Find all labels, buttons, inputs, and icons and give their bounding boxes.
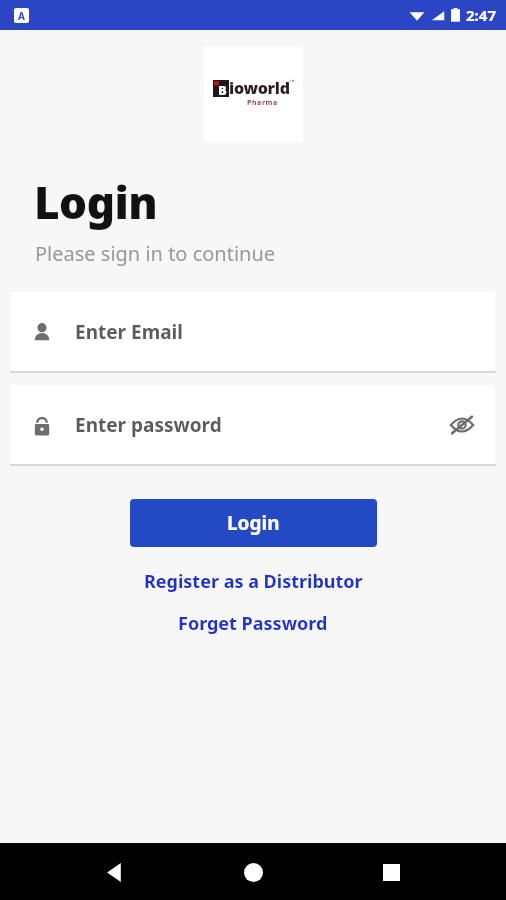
staticText: Enter Email <box>75 319 183 345</box>
button[interactable]: Register as a Distributor <box>132 565 375 598</box>
staticText: Login <box>34 172 158 232</box>
button[interactable]: Toggle password visibility <box>446 409 478 441</box>
button[interactable]: Home <box>230 849 276 895</box>
staticText: Pharma <box>247 98 278 108</box>
button[interactable]: Recent apps <box>368 849 414 895</box>
staticText: ioworld <box>229 77 290 99</box>
button[interactable]: Enter Email <box>11 292 495 371</box>
staticText: B <box>218 81 227 98</box>
staticText: Please sign in to continue <box>35 240 276 267</box>
button[interactable]: Login <box>130 499 377 547</box>
button[interactable]: Enter password <box>11 385 495 464</box>
button[interactable]: Back <box>92 849 138 895</box>
staticText: Login <box>227 510 280 536</box>
staticText: Forget Password <box>178 611 328 636</box>
staticText: ™ <box>290 78 295 86</box>
staticText: A <box>18 9 25 23</box>
staticText: Register as a Distributor <box>144 569 363 594</box>
button[interactable]: Forget Password <box>166 607 340 640</box>
staticText: 2:47 <box>466 5 496 25</box>
staticText: Enter password <box>75 412 222 438</box>
